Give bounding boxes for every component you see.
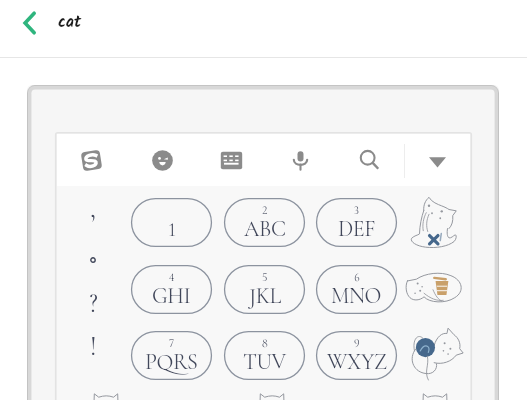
staticText: 4 xyxy=(169,270,175,285)
button[interactable]: Enter xyxy=(404,326,462,380)
button[interactable]: 4 xyxy=(131,265,212,314)
button[interactable]: Delete xyxy=(409,196,459,249)
staticText: ! xyxy=(90,330,97,363)
staticText: 9 xyxy=(354,336,360,351)
button[interactable]: Keyboard layout xyxy=(203,134,259,186)
button[interactable]: Symbols xyxy=(401,266,465,310)
button[interactable]: 9 xyxy=(316,331,397,380)
staticText: cat xyxy=(58,10,82,36)
staticText: ? xyxy=(89,287,98,320)
button[interactable] xyxy=(422,392,448,400)
staticText: 1 xyxy=(168,218,176,242)
button[interactable]: 7 xyxy=(131,331,212,380)
staticText: DEF xyxy=(338,216,376,243)
button[interactable]: 3 xyxy=(316,198,397,247)
staticText: 2 xyxy=(262,203,268,218)
button[interactable] xyxy=(259,392,285,400)
button[interactable]: 5 xyxy=(224,265,305,314)
staticText: 3 xyxy=(354,203,360,218)
staticText: WXYZ xyxy=(327,349,387,376)
staticText: PQRS xyxy=(145,349,198,376)
staticText: MNO xyxy=(331,283,382,310)
staticText: 5 xyxy=(262,270,268,285)
button[interactable]: 2 xyxy=(224,198,305,247)
button[interactable] xyxy=(93,392,119,400)
staticText: 6 xyxy=(354,270,360,285)
button[interactable]: Sogou keyboard xyxy=(63,134,119,186)
button[interactable]: ! xyxy=(70,324,116,366)
button[interactable]: , xyxy=(70,196,116,238)
staticText: JKL xyxy=(249,283,281,310)
button[interactable]: Back xyxy=(7,0,52,45)
button[interactable]: 。 xyxy=(70,239,116,281)
button[interactable]: Voice input xyxy=(272,134,328,186)
button[interactable]: ? xyxy=(70,281,116,323)
staticText: TUV xyxy=(243,349,286,376)
button[interactable]: 6 xyxy=(316,265,397,314)
button[interactable]: 1 xyxy=(131,198,212,247)
button[interactable]: Hide keyboard xyxy=(409,134,465,186)
button[interactable]: 8 xyxy=(224,331,305,380)
staticText: , xyxy=(90,192,96,225)
staticText: 8 xyxy=(262,336,268,351)
staticText: ABC xyxy=(244,216,286,243)
button[interactable]: Search xyxy=(341,134,397,186)
staticText: GHI xyxy=(152,283,191,310)
button[interactable]: Emoji xyxy=(134,134,190,186)
staticText: 7 xyxy=(169,336,175,351)
